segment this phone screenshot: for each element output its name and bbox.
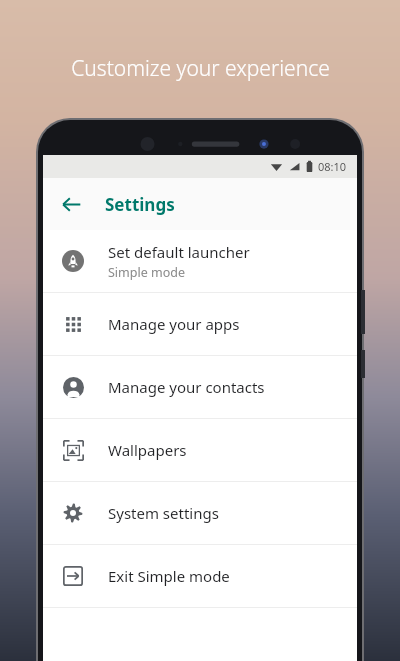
button[interactable]: Wallpapers — [43, 419, 357, 481]
button[interactable]: Set default launcher — [43, 230, 357, 292]
staticText: Simple mode — [108, 264, 185, 281]
staticText: Manage your contacts — [108, 377, 265, 397]
staticText: System settings — [108, 503, 219, 523]
staticText: Exit Simple mode — [108, 566, 230, 586]
staticText: Set default launcher — [108, 242, 250, 262]
button[interactable]: System settings — [43, 482, 357, 544]
button[interactable]: Exit Simple mode — [43, 545, 357, 607]
button[interactable]: Manage your apps — [43, 293, 357, 355]
button[interactable]: Back — [51, 184, 91, 224]
staticText: 08:10 — [318, 159, 347, 174]
staticText: Manage your apps — [108, 314, 240, 334]
staticText: Wallpapers — [108, 440, 187, 460]
button[interactable]: Manage your contacts — [43, 356, 357, 418]
staticText: Customize your experience — [71, 54, 330, 83]
staticText: Settings — [105, 193, 175, 216]
